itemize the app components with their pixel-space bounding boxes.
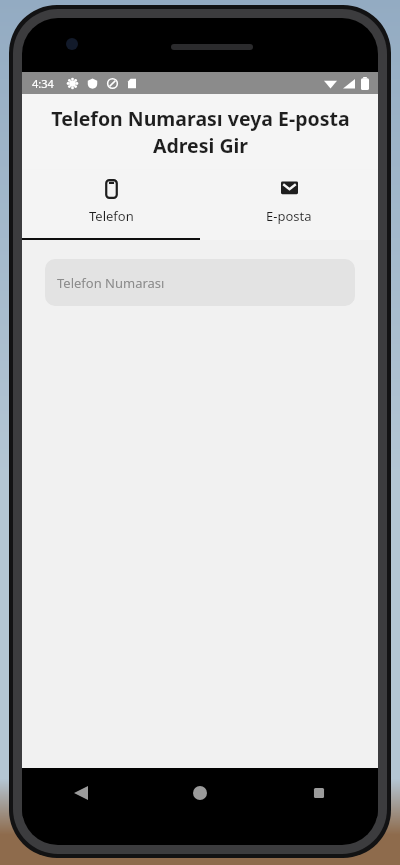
button[interactable]: Back bbox=[22, 768, 140, 818]
staticText: Telefon Numarası veya E-posta Adresi Gir bbox=[51, 105, 350, 159]
staticText: 4:34 bbox=[32, 76, 54, 91]
staticText: Telefon bbox=[89, 207, 134, 225]
button[interactable]: Telefon bbox=[22, 169, 200, 240]
button[interactable]: Recent apps bbox=[259, 768, 378, 818]
staticText: E-posta bbox=[266, 207, 312, 225]
button[interactable]: E-posta bbox=[200, 169, 378, 240]
staticText: Telefon Numarası bbox=[57, 274, 165, 292]
button[interactable]: Telefon Numarası bbox=[45, 259, 355, 306]
button[interactable]: Home bbox=[140, 768, 259, 818]
